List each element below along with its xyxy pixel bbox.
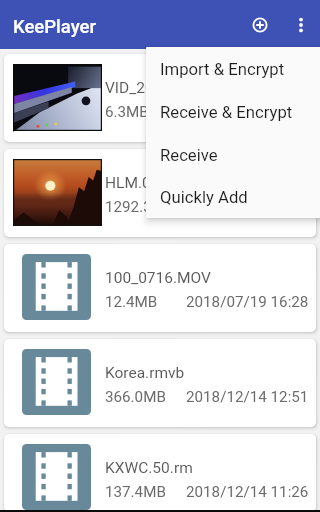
staticText: 2018/11/20 20:33 bbox=[186, 103, 309, 121]
button[interactable]: KXWC.50.rm bbox=[4, 434, 316, 512]
staticText: 12.4MB bbox=[105, 293, 158, 311]
staticText: Import & Encrypt bbox=[160, 60, 285, 80]
staticText: 1292.3MB bbox=[105, 198, 175, 216]
button[interactable]: Import & Encrypt bbox=[146, 48, 320, 91]
button[interactable]: Add bbox=[240, 5, 280, 45]
staticText: 6.3MB bbox=[105, 103, 149, 121]
staticText: Receive & Encrypt bbox=[160, 103, 293, 123]
button[interactable]: More options bbox=[281, 5, 320, 45]
staticText: Korea.rmvb bbox=[105, 364, 185, 382]
button[interactable]: HLM.01.rmvb bbox=[4, 149, 316, 237]
button[interactable]: Quickly Add bbox=[146, 177, 320, 218]
button[interactable]: 100_0716.MOV bbox=[4, 244, 316, 332]
staticText: HLM.01.rmvb bbox=[105, 174, 199, 192]
button[interactable]: Receive bbox=[146, 134, 320, 177]
staticText: KeePlayer bbox=[13, 16, 97, 38]
staticText: Quickly Add bbox=[160, 188, 248, 208]
staticText: 2018/12/14 11:26 bbox=[186, 483, 309, 501]
button[interactable]: Korea.rmvb bbox=[4, 339, 316, 427]
staticText: Receive bbox=[160, 146, 218, 166]
staticText: 2018/07/19 16:28 bbox=[186, 293, 309, 311]
staticText: KXWC.50.rm bbox=[105, 459, 193, 477]
staticText: 100_0716.MOV bbox=[105, 269, 211, 287]
staticText: 366.0MB bbox=[105, 388, 166, 406]
staticText: 2018/12/14 12:51 bbox=[186, 388, 309, 406]
staticText: 2018/12/14 13:02 bbox=[186, 198, 309, 216]
button[interactable]: Receive & Encrypt bbox=[146, 91, 320, 134]
button[interactable]: VID_20181120_203311.mp4 bbox=[4, 54, 316, 142]
staticText: 137.4MB bbox=[105, 483, 166, 501]
staticText: VID_20181120_203311.mp4 bbox=[105, 79, 301, 97]
